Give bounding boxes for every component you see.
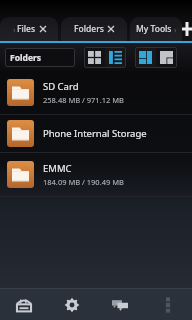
button[interactable]: Grid view: [84, 47, 105, 68]
button[interactable]: More options: [144, 289, 192, 320]
staticText: Folders: [74, 23, 104, 35]
button[interactable]: Folders: [61, 17, 127, 41]
button[interactable]: Dual pane: [156, 47, 177, 68]
staticText: Folders: [10, 52, 42, 64]
button[interactable]: Folders: [5, 48, 75, 67]
staticText: EMMC: [43, 162, 72, 175]
button[interactable]: Phone Internal Storage: [0, 115, 192, 152]
staticText: ›: [13, 24, 16, 35]
staticText: 184.09 MB / 190.49 MB: [43, 177, 124, 187]
staticText: My Tools: [136, 23, 172, 35]
button[interactable]: SD Card: [0, 71, 192, 114]
button[interactable]: Messages: [96, 289, 144, 320]
button[interactable]: New tab: [182, 17, 192, 41]
staticText: Files: [17, 23, 36, 35]
staticText: Phone Internal Storage: [43, 127, 147, 140]
button[interactable]: Settings: [48, 289, 96, 320]
button[interactable]: Home: [0, 289, 48, 320]
button[interactable]: My Tools: [130, 17, 182, 41]
button[interactable]: Single pane: [135, 47, 156, 68]
staticText: SD Card: [43, 80, 79, 93]
button[interactable]: ›: [0, 17, 58, 41]
button[interactable]: List view: [105, 47, 126, 68]
staticText: ›: [174, 24, 177, 35]
staticText: 258.48 MB / 971.12 MB: [43, 95, 124, 105]
button[interactable]: EMMC: [0, 153, 192, 196]
